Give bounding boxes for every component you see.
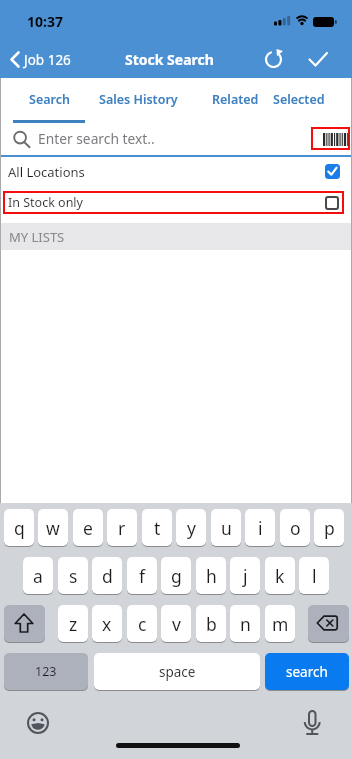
button[interactable]: k (265, 557, 295, 594)
button[interactable] (325, 164, 340, 179)
button[interactable]: v (161, 605, 191, 642)
button[interactable]: a (23, 557, 53, 594)
staticText: c (138, 612, 147, 636)
staticText: p (324, 516, 335, 540)
button[interactable]: g (161, 557, 191, 594)
button[interactable]: 123 (4, 653, 88, 690)
button[interactable]: o (280, 509, 310, 546)
button[interactable]: n (230, 605, 260, 642)
staticText: 10:37 (27, 12, 63, 28)
button[interactable]: search (265, 653, 349, 690)
button[interactable] (24, 709, 52, 737)
staticText: z (69, 612, 78, 636)
staticText: l (312, 564, 317, 588)
button[interactable]: m (265, 605, 295, 642)
staticText: 123 (35, 663, 57, 680)
button[interactable] (4, 605, 45, 642)
button[interactable] (0, 123, 310, 155)
button[interactable]: d (92, 557, 122, 594)
staticText: space (159, 663, 196, 681)
button[interactable]: j (230, 557, 260, 594)
staticText: Job 126 (24, 51, 71, 69)
staticText: v (172, 612, 181, 636)
button[interactable]: l (299, 557, 329, 594)
staticText: MY LISTS (9, 228, 65, 246)
staticText: q (14, 516, 25, 540)
staticText: Sales History (99, 91, 178, 108)
staticText: y (187, 516, 196, 540)
staticText: search (286, 663, 328, 681)
staticText: h (206, 564, 217, 588)
button[interactable]: r (107, 509, 137, 546)
staticText: r (118, 516, 126, 540)
staticText: j (243, 564, 248, 588)
staticText: d (102, 564, 113, 588)
button[interactable]: c (127, 605, 157, 642)
staticText: Selected (273, 91, 325, 108)
staticText: k (275, 564, 285, 588)
staticText: e (83, 516, 93, 540)
button[interactable]: u (211, 509, 241, 546)
staticText: s (69, 564, 78, 588)
button[interactable] (0, 157, 352, 189)
staticText: Related (212, 91, 259, 108)
button[interactable]: f (127, 557, 157, 594)
button[interactable] (325, 196, 339, 210)
staticText: All Locations (8, 163, 85, 181)
button[interactable] (4, 44, 66, 74)
button[interactable]: Search (13, 85, 85, 113)
staticText: i (258, 516, 263, 540)
button[interactable]: e (73, 509, 103, 546)
button[interactable]: y (176, 509, 206, 546)
staticText: Enter search text.. (38, 129, 155, 147)
staticText: w (46, 516, 60, 540)
staticText: f (139, 564, 146, 588)
staticText: m (272, 612, 289, 636)
button[interactable]: h (196, 557, 226, 594)
button[interactable]: Selected (266, 85, 331, 113)
button[interactable]: space (94, 653, 260, 690)
button[interactable]: w (38, 509, 68, 546)
staticText: a (33, 564, 43, 588)
staticText: Stock Search (125, 50, 214, 69)
button[interactable]: p (314, 509, 344, 546)
button[interactable] (308, 605, 349, 642)
button[interactable]: b (196, 605, 226, 642)
button[interactable] (3, 191, 344, 214)
button[interactable] (298, 709, 326, 737)
button[interactable] (304, 46, 332, 73)
button[interactable]: x (92, 605, 122, 642)
button[interactable]: t (142, 509, 172, 546)
button[interactable]: q (4, 509, 34, 546)
staticText: Search (29, 91, 70, 108)
staticText: n (240, 612, 251, 636)
staticText: u (221, 516, 232, 540)
staticText: b (206, 612, 217, 636)
button[interactable] (311, 127, 350, 150)
staticText: x (102, 612, 112, 636)
button[interactable] (260, 46, 287, 73)
staticText: g (171, 564, 182, 588)
staticText: t (154, 516, 161, 540)
staticText: o (290, 516, 301, 540)
button[interactable]: Sales History (95, 85, 181, 113)
staticText: In Stock only (8, 194, 83, 211)
button[interactable]: Related (205, 85, 265, 113)
button[interactable]: z (58, 605, 88, 642)
button[interactable]: i (245, 509, 275, 546)
button[interactable]: s (58, 557, 88, 594)
